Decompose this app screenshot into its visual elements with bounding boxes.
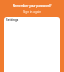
staticText: Sign in again [0, 10, 64, 14]
staticText: Settings [6, 18, 19, 22]
staticText: Remember your password? [0, 4, 64, 8]
